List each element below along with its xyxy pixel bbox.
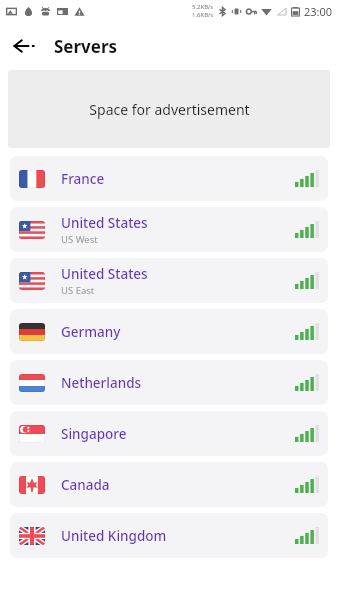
button[interactable]: Back <box>6 28 42 64</box>
button[interactable]: Canada <box>10 462 328 507</box>
button[interactable]: United States <box>10 258 328 303</box>
staticText: United Kingdom <box>61 527 167 545</box>
staticText: France <box>61 170 105 188</box>
staticText: United States <box>61 214 148 232</box>
button[interactable]: United Kingdom <box>10 513 328 558</box>
staticText: Space for advertisement <box>89 100 250 119</box>
staticText: US East <box>61 284 95 297</box>
staticText: Netherlands <box>61 374 142 392</box>
button[interactable]: Netherlands <box>10 360 328 405</box>
button[interactable]: United States <box>10 207 328 252</box>
button[interactable]: Space for advertisement <box>8 70 330 148</box>
staticText: Germany <box>61 323 121 341</box>
staticText: Singapore <box>61 425 127 443</box>
button[interactable]: Germany <box>10 309 328 354</box>
staticText: Servers <box>54 35 118 58</box>
staticText: Canada <box>61 476 110 494</box>
staticText: United States <box>61 265 148 283</box>
staticText: US West <box>61 233 98 246</box>
staticText: 23:00 <box>304 4 333 19</box>
button[interactable]: France <box>10 156 328 201</box>
button[interactable]: Singapore <box>10 411 328 456</box>
staticText: 1.6KB/s <box>192 11 214 19</box>
staticText: 5.2KB/s <box>192 3 214 11</box>
